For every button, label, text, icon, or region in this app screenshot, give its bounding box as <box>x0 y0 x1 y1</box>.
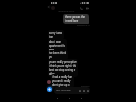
button[interactable]: Text message <box>54 87 90 94</box>
staticText: there ya was the <box>65 15 86 19</box>
staticText: apartment fo <box>49 44 66 48</box>
staticText: i think youre right i thi <box>49 64 76 68</box>
button[interactable]: Back <box>45 3 52 10</box>
button[interactable]: i had a really fun <box>51 74 74 88</box>
staticText: yo <box>49 55 52 59</box>
button[interactable]: Call <box>78 5 84 11</box>
staticText: othe <box>49 72 55 76</box>
button[interactable]: Home <box>66 95 73 102</box>
button[interactable]: Recents <box>78 95 85 102</box>
staticText: sorry i was <box>49 31 63 35</box>
staticText: youre really perceptive <box>49 60 77 64</box>
button[interactable]: ive been think <box>48 50 68 60</box>
button[interactable]: Contact photo <box>51 6 55 10</box>
staticText: best we stop seeing e <box>49 68 76 72</box>
staticText: dont give up o <box>52 83 70 87</box>
staticText: i need love <box>65 19 79 23</box>
staticText: Delivered 9:14 <box>77 24 90 27</box>
button[interactable]: there ya was the <box>63 14 89 24</box>
staticText: Text message <box>56 89 71 92</box>
button[interactable]: Back <box>54 95 61 102</box>
button[interactable]: sorry i was <box>48 30 64 40</box>
staticText: i had a really fun <box>52 75 73 79</box>
staticText: Yesterday 8:02 PM <box>58 10 75 13</box>
staticText: ive been think <box>49 51 67 55</box>
button[interactable]: Attach <box>82 89 85 92</box>
button[interactable]: youre really perceptive <box>48 59 78 77</box>
button[interactable]: Add attachment <box>47 87 52 92</box>
staticText: ton <box>49 35 54 39</box>
staticText: wee <box>49 48 54 52</box>
staticText: Delivered <box>81 85 90 88</box>
button[interactable]: Attach <box>78 89 81 92</box>
staticText: you and i really <box>52 79 71 83</box>
button[interactable]: Video call <box>84 5 90 11</box>
staticText: also i won <box>49 40 62 44</box>
button[interactable]: also i won <box>48 39 67 53</box>
button[interactable]: Attach <box>86 89 89 92</box>
